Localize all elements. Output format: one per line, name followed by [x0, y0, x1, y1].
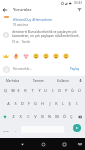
button[interactable]: Reaction [3, 53, 9, 59]
button[interactable]: Backspace [76, 112, 84, 121]
button[interactable]: V [33, 112, 38, 121]
button[interactable]: Reaction [63, 53, 69, 59]
button[interactable]: Ü [77, 86, 82, 95]
staticText: Q [4, 88, 7, 93]
staticText: K [55, 101, 58, 106]
button[interactable]: Reaction [13, 53, 19, 59]
button[interactable]: T [30, 86, 35, 95]
staticText: J [49, 101, 51, 106]
staticText: R [24, 88, 27, 93]
button[interactable]: J [47, 99, 52, 108]
staticText: C [27, 114, 30, 119]
button[interactable]: Comma [12, 126, 18, 134]
staticText: I [76, 101, 78, 106]
button[interactable]: Reaction [23, 53, 29, 59]
button[interactable]: #SesimiDuy #Hemsehrim [13, 17, 53, 21]
button[interactable]: Back [0, 5, 9, 14]
button[interactable]: I [74, 99, 79, 108]
staticText: T [31, 88, 34, 93]
button[interactable]: I [50, 86, 55, 95]
button[interactable]: P [64, 86, 69, 95]
staticText: Y [38, 88, 41, 93]
button[interactable]: H [40, 99, 45, 108]
button[interactable]: Y [37, 86, 42, 95]
staticText: Ö [63, 114, 66, 119]
staticText: G [34, 101, 37, 106]
button[interactable]: G [33, 99, 38, 108]
staticText: Ü [78, 88, 81, 93]
button[interactable]: Ş [67, 99, 72, 108]
button[interactable]: B [40, 112, 45, 121]
staticText: denizsertt Bursa'da etkinlik ve paylaşım… [12, 30, 84, 38]
staticText: B [41, 114, 44, 119]
button[interactable]: K [54, 99, 59, 108]
staticText: Z [12, 114, 15, 119]
button[interactable]: Reaction [43, 53, 49, 59]
button[interactable]: Voice input [76, 76, 85, 85]
staticText: ?123 [3, 129, 9, 132]
button[interactable]: Home [38, 138, 48, 150]
button[interactable]: R [23, 86, 28, 95]
staticText: , [15, 128, 16, 132]
staticText: Yorum ekle... [13, 67, 32, 71]
staticText: I [52, 88, 54, 93]
button[interactable]: Recents [59, 138, 69, 150]
button[interactable]: Reaction [33, 53, 39, 59]
staticText: F [28, 101, 30, 106]
button[interactable]: E [16, 86, 21, 95]
button[interactable]: U [43, 86, 48, 95]
button[interactable]: O [57, 86, 62, 95]
button[interactable]: A [6, 99, 11, 108]
button[interactable]: Kullanıcı [51, 76, 76, 85]
staticText: P [65, 88, 68, 93]
staticText: Yorumlar [13, 7, 32, 13]
button[interactable]: Q [3, 86, 8, 95]
button[interactable]: Back [17, 138, 27, 150]
button[interactable]: Z [11, 112, 16, 121]
button[interactable]: Tamam [26, 76, 51, 85]
button[interactable]: S [13, 99, 18, 108]
button[interactable]: N [47, 112, 52, 121]
staticText: O [58, 88, 61, 93]
staticText: V [34, 114, 37, 119]
button[interactable]: C [26, 112, 31, 121]
staticText: Merhaba [6, 79, 20, 83]
staticText: D [21, 101, 24, 106]
button[interactable]: Ğ [70, 86, 75, 95]
button[interactable]: W [10, 86, 15, 95]
button[interactable]: L [60, 99, 65, 108]
staticText: X [19, 114, 22, 119]
button[interactable]: Hide keyboard [76, 138, 84, 150]
staticText: #SesimiDuy #Hemsehrim [13, 17, 53, 21]
staticText: S [14, 101, 17, 106]
button[interactable]: ?123 [1, 126, 10, 134]
staticText: Kullanıcı [57, 79, 70, 83]
button[interactable]: Send [73, 124, 81, 132]
button[interactable]: D [20, 99, 25, 108]
button[interactable]: Filter [73, 5, 85, 14]
button[interactable]: X [18, 112, 23, 121]
button[interactable]: Ç [69, 112, 74, 121]
staticText: Tamam [33, 79, 44, 83]
staticText: W [11, 88, 15, 93]
staticText: M [55, 114, 59, 119]
button[interactable]: Ö [62, 112, 67, 121]
button[interactable]: M [54, 112, 59, 121]
staticText: Ç [70, 114, 73, 119]
button[interactable]: Shift [1, 112, 9, 121]
staticText: N [48, 114, 51, 119]
button[interactable]: Merhaba [0, 76, 26, 85]
button[interactable]: Paylaş [68, 65, 82, 73]
button[interactable]: F [26, 99, 31, 108]
staticText: L [62, 101, 64, 106]
staticText: 18 saat önce [13, 23, 29, 27]
staticText: E [17, 88, 20, 93]
staticText: . [68, 128, 69, 132]
staticText: A [7, 101, 10, 106]
staticText: 18 sa Yanıtla [12, 40, 30, 44]
staticText: Paylaş [70, 67, 80, 71]
button[interactable]: Reaction [53, 53, 59, 59]
staticText: 00:43 [74, 1, 83, 5]
